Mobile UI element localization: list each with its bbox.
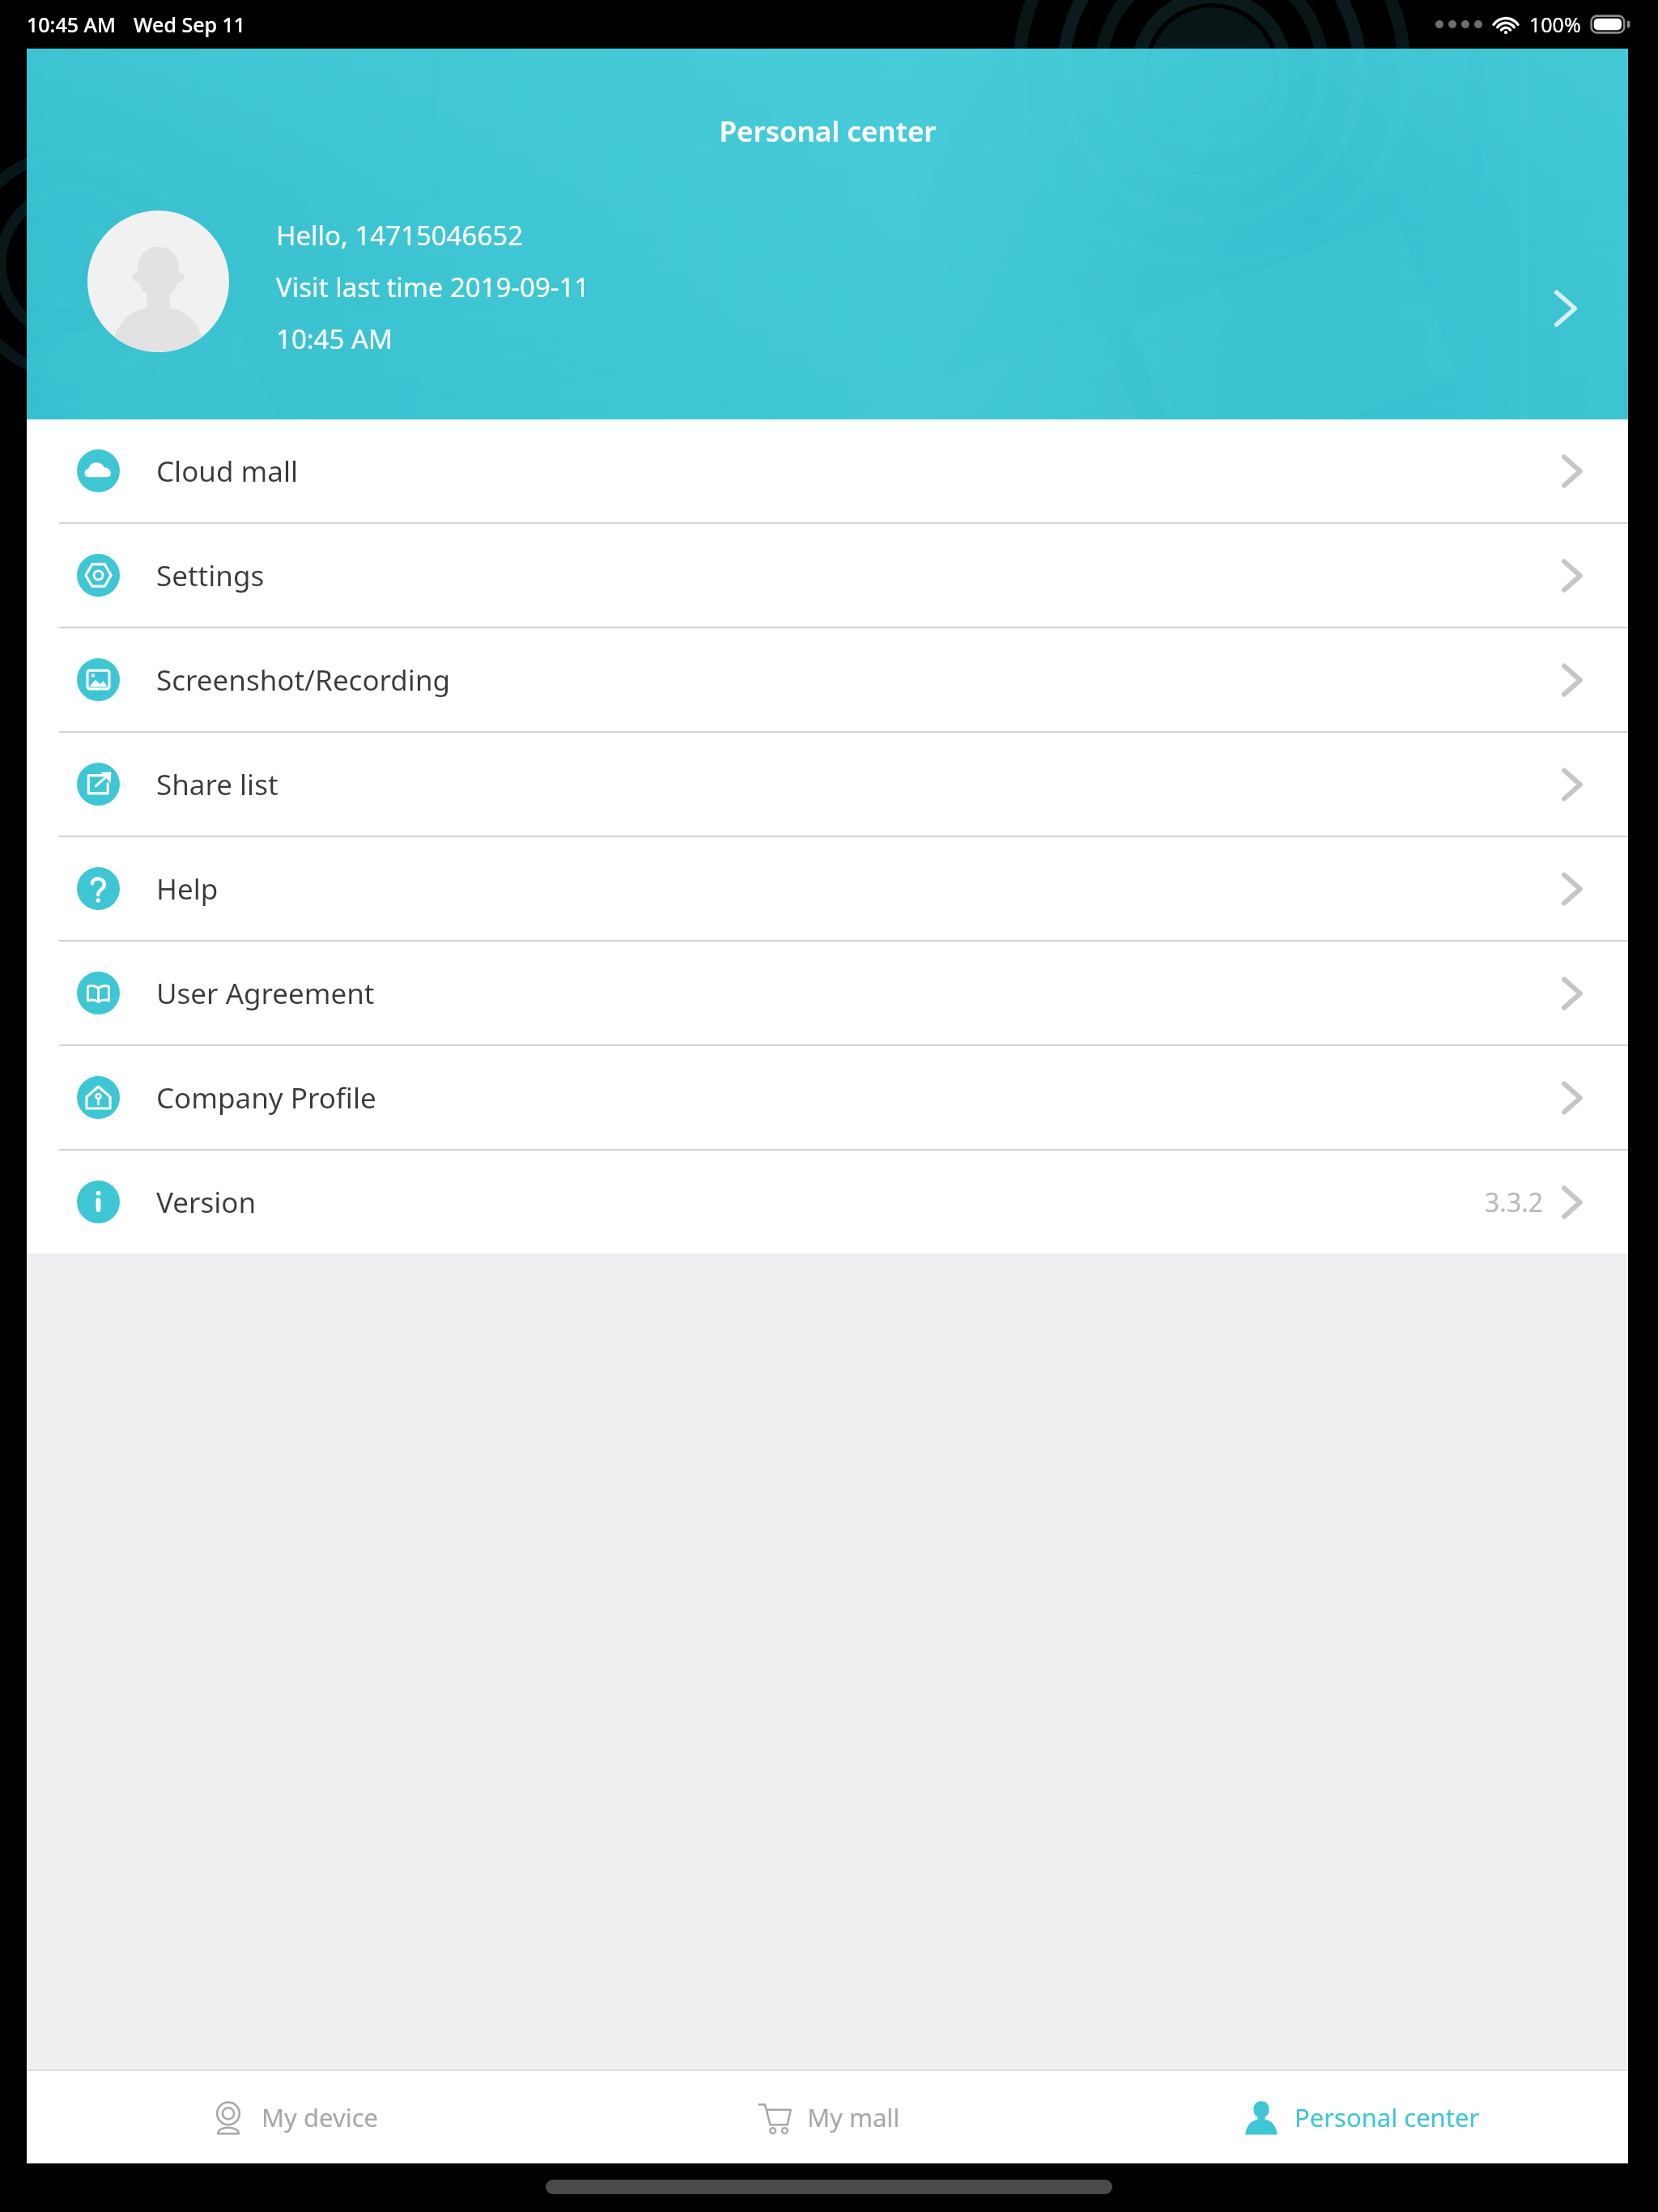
staticText: Personal center	[1295, 2100, 1480, 2134]
button[interactable]: Share list	[27, 733, 1628, 836]
staticText: My device	[261, 2100, 379, 2134]
staticText: 100%	[1529, 11, 1581, 38]
staticText: 10:45 AM	[27, 11, 116, 38]
staticText: Help	[156, 870, 219, 908]
staticText: User Agreement	[156, 974, 375, 1013]
button[interactable]: My device	[27, 2071, 561, 2163]
button[interactable]: Settings	[27, 524, 1628, 627]
staticText: Version	[156, 1183, 257, 1222]
staticText: Company Profile	[156, 1078, 376, 1117]
button[interactable]: Cloud mall	[27, 419, 1628, 522]
button[interactable]: Company Profile	[27, 1046, 1628, 1149]
staticText: Hello, 14715046652	[276, 217, 524, 253]
staticText: My mall	[807, 2100, 900, 2134]
staticText: Settings	[156, 556, 265, 595]
button[interactable]: My mall	[561, 2071, 1095, 2163]
button[interactable]: User Agreement	[27, 942, 1628, 1044]
staticText: Share list	[156, 765, 278, 804]
button[interactable]: Personal center	[1095, 2071, 1628, 2163]
button[interactable]: Screenshot/Recording	[27, 628, 1628, 731]
staticText: Visit last time 2019-09-11	[276, 269, 590, 305]
staticText: Screenshot/Recording	[156, 661, 451, 700]
staticText: Personal center	[719, 112, 937, 151]
staticText: 10:45 AM	[276, 321, 393, 357]
button[interactable]: Help	[27, 837, 1628, 940]
button[interactable]: Personal center	[27, 49, 1628, 419]
staticText: 3.3.2	[1485, 1185, 1544, 1220]
staticText: Cloud mall	[156, 452, 299, 491]
staticText: Wed Sep 11	[134, 11, 246, 38]
button[interactable]: Version	[27, 1151, 1628, 1253]
